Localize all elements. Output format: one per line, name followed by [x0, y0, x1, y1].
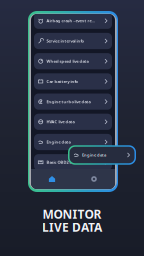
staticText: Wheel speed live data	[46, 58, 88, 64]
staticText: Engine data	[46, 139, 70, 145]
button[interactable]: Wheel speed live data	[34, 53, 112, 69]
button[interactable]: Car battery info	[34, 73, 112, 89]
button[interactable]: Airbag crash - event report	[34, 13, 112, 29]
staticText: Service interval info	[46, 38, 83, 44]
button[interactable]: HVAC live data	[34, 114, 112, 130]
staticText: Engine data	[82, 152, 106, 158]
button[interactable]: Service interval info	[34, 33, 112, 49]
staticText: Basic OBD2 live data	[46, 159, 85, 165]
staticText: Airbag crash - event report	[46, 18, 96, 23]
button[interactable]: Home	[31, 169, 73, 189]
button[interactable]: Engine data	[34, 134, 112, 150]
staticText: LIVE DATA	[42, 219, 102, 235]
staticText: Car battery info	[46, 79, 77, 84]
button[interactable]: Basic OBD2 live data	[34, 154, 112, 170]
staticText: HVAC live data	[46, 119, 74, 124]
button[interactable]: Settings	[73, 169, 115, 189]
button[interactable]: Engine data	[68, 145, 136, 165]
staticText: Engine turbo live data	[46, 99, 90, 104]
button[interactable]: Engine turbo live data	[34, 93, 112, 110]
staticText: MONITOR	[42, 206, 101, 222]
